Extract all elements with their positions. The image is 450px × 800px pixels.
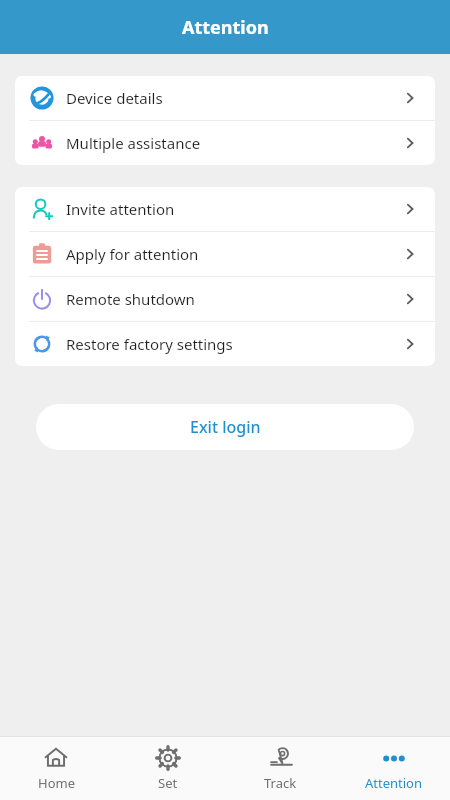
other: Remote shutdown (30, 287, 54, 311)
other: Set (155, 745, 181, 771)
staticText: Invite attention (66, 199, 401, 219)
staticText: Restore factory settings (66, 334, 401, 354)
staticText: Set (158, 774, 178, 792)
staticText: Attention (182, 15, 269, 40)
staticText: Attention (365, 774, 423, 792)
staticText: Device details (66, 88, 401, 108)
other: Invite attention (30, 197, 54, 221)
button[interactable]: Restore factory settings (15, 322, 435, 366)
button[interactable]: Exit login (36, 404, 414, 450)
button[interactable]: Apply for attention (15, 232, 435, 276)
staticText: Home (38, 774, 75, 792)
staticText: Track (264, 774, 297, 792)
other: Multiple assistance (30, 131, 54, 155)
button[interactable]: Set (112, 736, 224, 800)
button[interactable]: Attention (337, 736, 450, 800)
other: Restore factory settings (30, 332, 54, 356)
staticText: Remote shutdown (66, 289, 401, 309)
button[interactable]: Multiple assistance (15, 121, 435, 165)
button[interactable]: Track (224, 736, 337, 800)
other: Apply for attention (30, 242, 54, 266)
staticText: Multiple assistance (66, 133, 401, 153)
button[interactable]: Home (0, 736, 112, 800)
staticText: Apply for attention (66, 244, 401, 264)
other: Home (43, 745, 69, 771)
other: Track (268, 745, 294, 771)
other: Attention (381, 745, 407, 771)
other: Device details (30, 86, 54, 110)
button[interactable]: Remote shutdown (15, 277, 435, 321)
button[interactable]: Invite attention (15, 187, 435, 231)
button[interactable]: Device details (15, 76, 435, 120)
staticText: Exit login (190, 416, 261, 438)
